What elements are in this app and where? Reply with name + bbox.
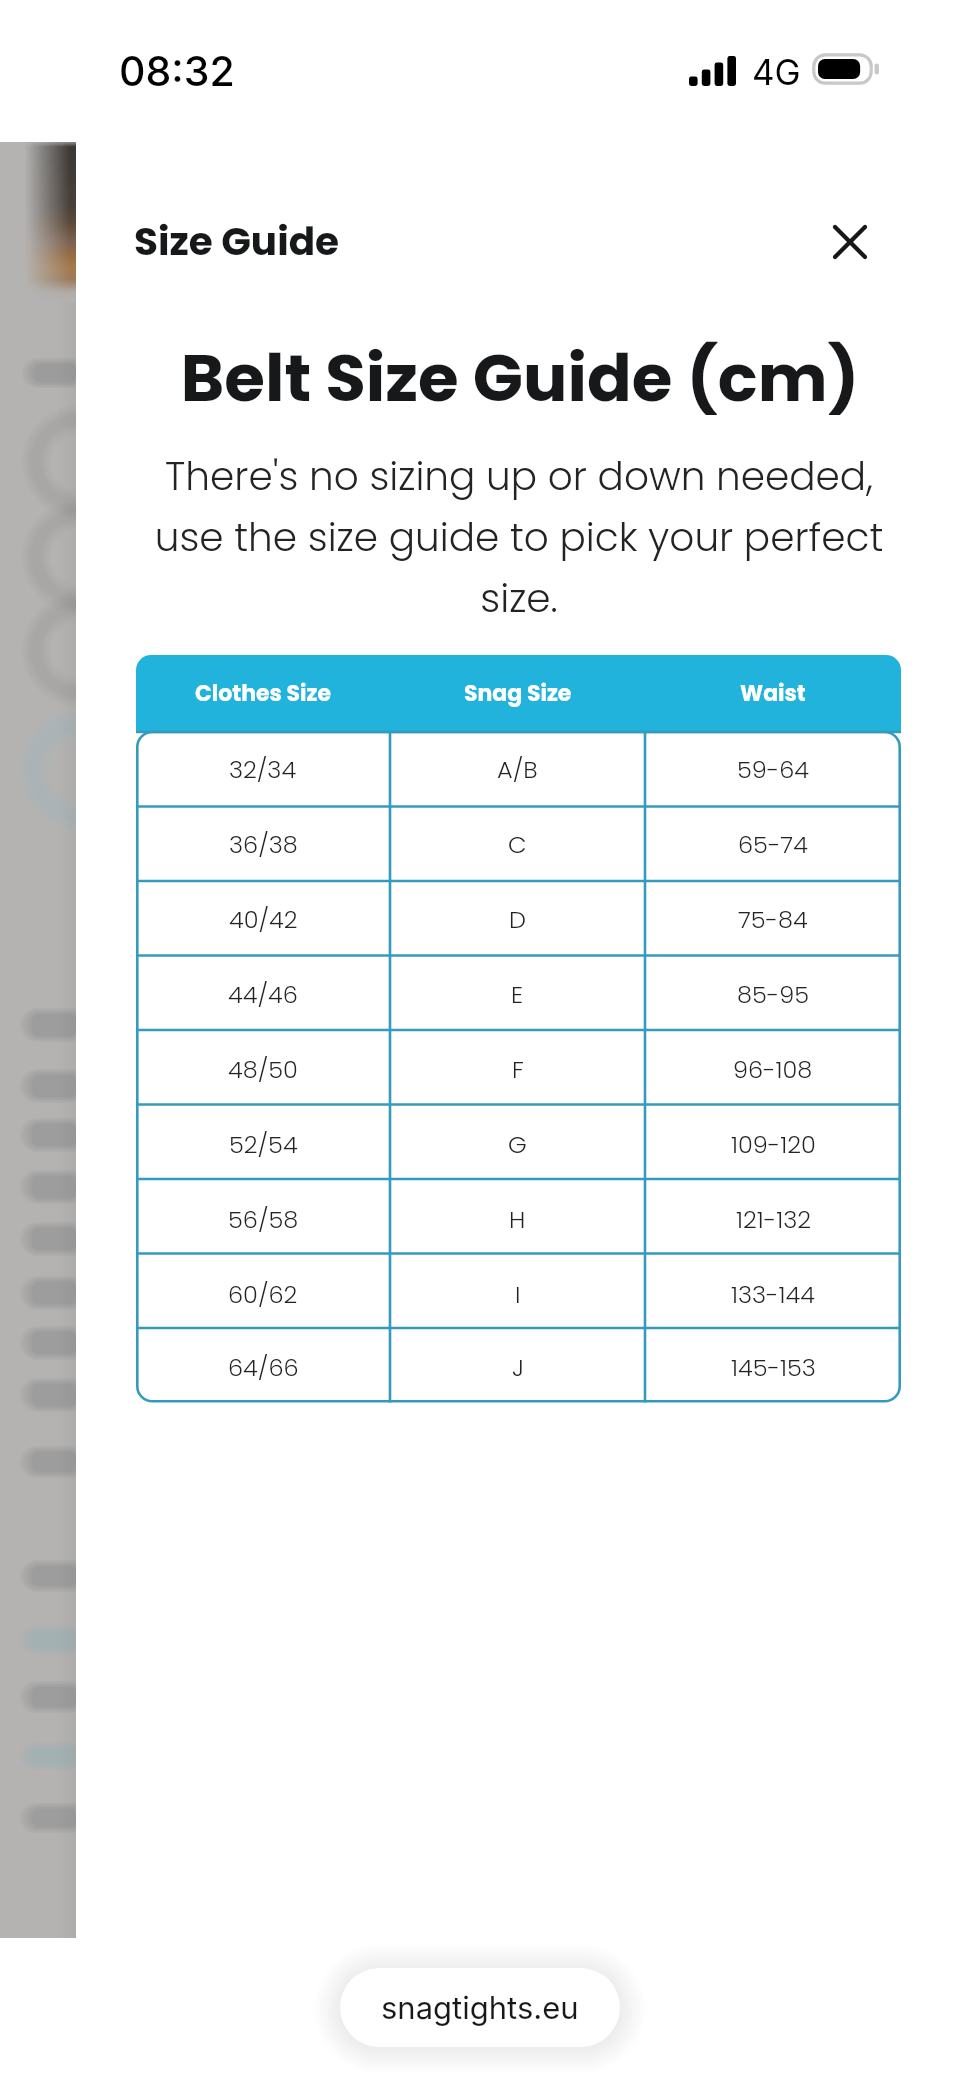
staticText: D [509, 903, 526, 937]
staticText: 40/42 [229, 903, 298, 937]
staticText: 60/62 [228, 1278, 298, 1312]
staticText: A/B [497, 753, 538, 787]
staticText: Clothes Size [195, 678, 332, 709]
staticText: 48/50 [228, 1053, 298, 1087]
staticText: J [512, 1351, 524, 1385]
staticText: G [508, 1128, 527, 1162]
staticText: H [509, 1203, 526, 1237]
staticText: 08:32 [119, 46, 235, 96]
staticText: C [508, 828, 527, 862]
staticText: F [512, 1053, 524, 1087]
staticText: 59-64 [737, 753, 810, 787]
staticText: 52/54 [229, 1128, 298, 1162]
staticText: Snag Size [464, 678, 572, 709]
staticText: 4G [752, 51, 801, 93]
button[interactable]: snagtights.eu [340, 1968, 620, 2047]
staticText: 56/58 [228, 1203, 299, 1237]
staticText: 32/34 [229, 753, 297, 787]
staticText: 36/38 [229, 828, 298, 862]
staticText: 65-74 [738, 828, 808, 862]
staticText: 44/46 [228, 978, 298, 1012]
staticText: Belt Size Guide (cm) [78, 332, 960, 424]
staticText: snagtights.eu [381, 1989, 579, 2027]
staticText: 96-108 [733, 1053, 813, 1087]
staticText: 145-153 [731, 1351, 816, 1385]
button[interactable]: Close [818, 210, 881, 273]
staticText: E [511, 978, 524, 1012]
staticText: Waist [740, 678, 806, 709]
staticText: 64/66 [228, 1351, 299, 1385]
staticText: 75-84 [738, 903, 808, 937]
staticText: I [515, 1278, 521, 1312]
button[interactable]: Size Guide [134, 214, 340, 269]
staticText: 121-132 [736, 1203, 811, 1237]
staticText: 85-95 [737, 978, 810, 1012]
staticText: 109-120 [731, 1128, 816, 1162]
staticText: 133-144 [731, 1278, 815, 1312]
staticText: There's no sizing up or down needed, use… [139, 449, 899, 625]
